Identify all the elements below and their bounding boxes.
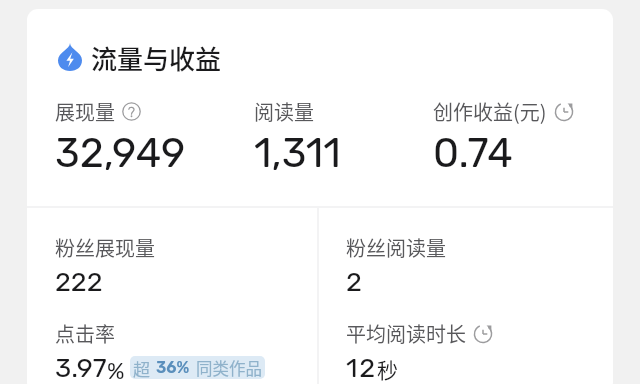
staticText: 12 xyxy=(346,352,377,384)
staticText: 222 xyxy=(55,266,103,298)
button[interactable]: 超 xyxy=(130,356,265,379)
staticText: 点击率 xyxy=(55,319,115,348)
staticText: 1,311 xyxy=(254,129,341,178)
staticText: 创作收益(元) xyxy=(433,97,547,126)
button[interactable]: 平均阅读时长 xyxy=(346,319,493,384)
staticText: 阅读量 xyxy=(254,97,314,126)
staticText: % xyxy=(107,357,125,384)
staticText: 秒 xyxy=(377,354,398,384)
staticText: 粉丝阅读量 xyxy=(346,233,446,262)
button[interactable]: 创作收益(元) xyxy=(433,97,574,178)
other: Refresh xyxy=(473,324,493,344)
staticText: 36% xyxy=(156,358,190,377)
staticText: 展现量 xyxy=(55,97,115,126)
button[interactable]: 展现量 xyxy=(55,97,186,178)
staticText: 粉丝展现量 xyxy=(55,233,155,262)
staticText: 同类作品 xyxy=(196,356,262,379)
other: Refresh xyxy=(554,102,574,122)
staticText: 超 xyxy=(133,356,150,379)
button[interactable]: 粉丝展现量 xyxy=(55,233,155,298)
staticText: 平均阅读时长 xyxy=(346,319,466,348)
staticText: 2 xyxy=(346,266,362,298)
button[interactable]: 流量与收益 xyxy=(55,36,186,74)
staticText: 32,949 xyxy=(55,129,186,178)
staticText: 流量与收益 xyxy=(91,39,222,77)
other: Help xyxy=(122,102,141,121)
staticText: 3.97 xyxy=(55,352,107,384)
button[interactable]: 阅读量 xyxy=(254,97,341,178)
button[interactable]: 粉丝阅读量 xyxy=(346,233,446,298)
button[interactable]: 点击率 xyxy=(55,319,265,384)
staticText: 0.74 xyxy=(433,129,513,178)
